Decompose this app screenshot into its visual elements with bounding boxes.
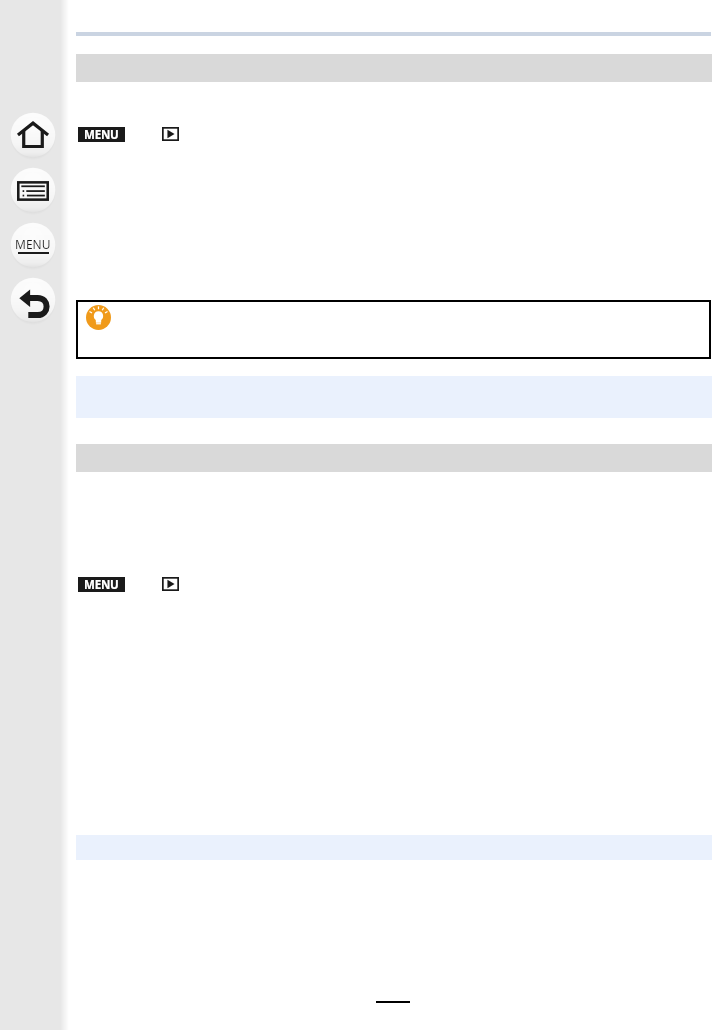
button[interactable]: Play <box>162 577 179 591</box>
button[interactable]: MENU <box>78 127 125 142</box>
button[interactable]: Menu <box>10 222 56 268</box>
staticText: MENU <box>84 127 119 142</box>
button[interactable]: Back <box>10 277 56 323</box>
staticText: MENU <box>84 577 119 592</box>
button[interactable]: MENU <box>78 577 125 592</box>
button[interactable]: Play <box>162 127 179 141</box>
staticText: MENU <box>15 236 51 252</box>
button[interactable]: Contents <box>10 167 56 213</box>
button[interactable]: Home <box>10 112 56 158</box>
